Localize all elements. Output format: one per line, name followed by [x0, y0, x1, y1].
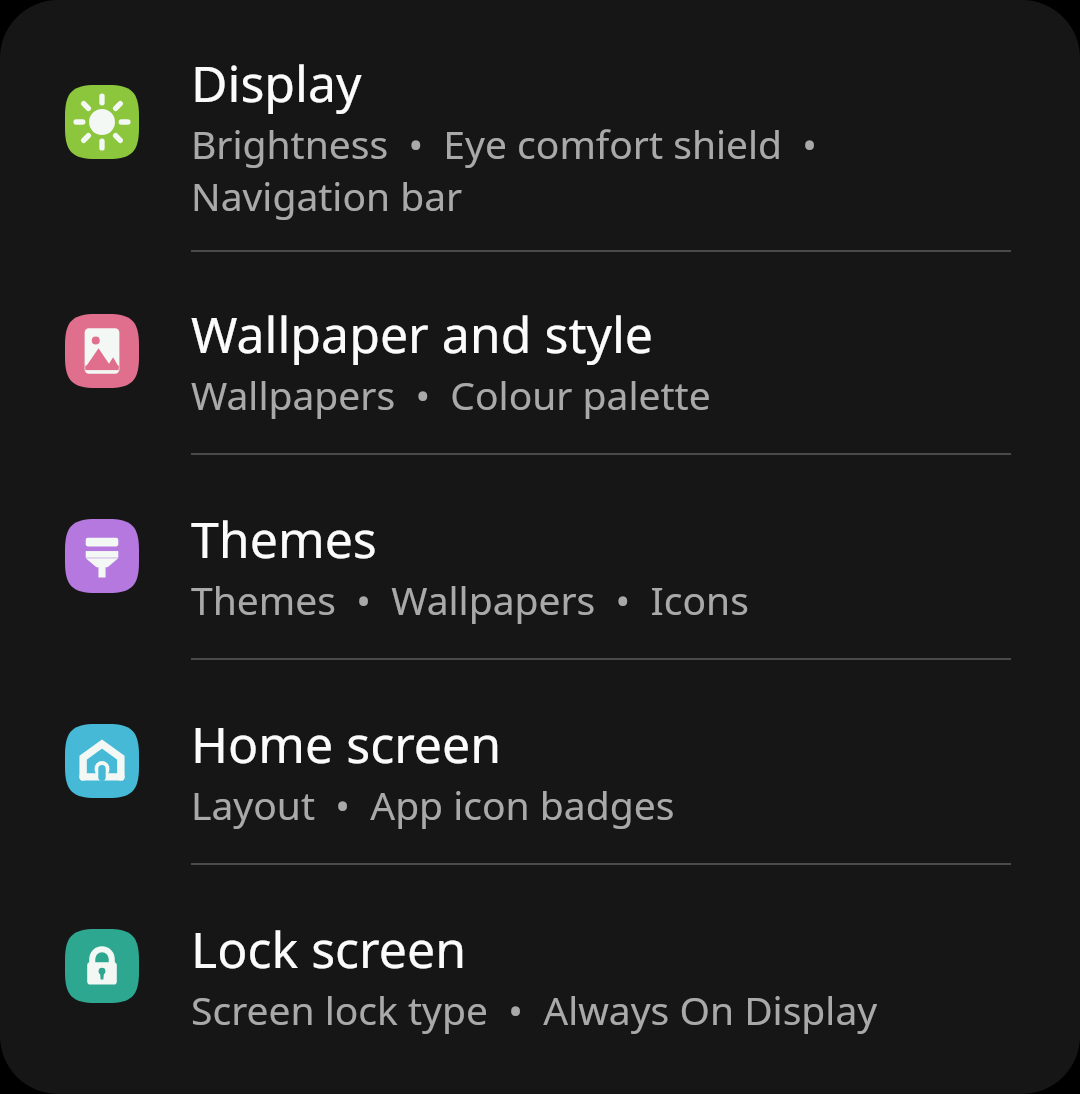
staticText: Home screen [191, 710, 502, 778]
staticText: Lock screen [191, 915, 467, 983]
staticText: Brightness • Eye comfort shield • Naviga… [191, 117, 1011, 222]
staticText: Themes [191, 505, 377, 573]
button[interactable] [0, 688, 1080, 863]
staticText: Screen lock type • Always On Display [191, 983, 878, 1036]
button[interactable] [0, 893, 1080, 1040]
staticText: Themes • Wallpapers • Icons [191, 573, 749, 626]
button[interactable] [0, 278, 1080, 453]
button[interactable] [0, 483, 1080, 658]
staticText: Display [191, 49, 362, 117]
staticText: Layout • App icon badges [191, 778, 675, 831]
staticText: Wallpaper and style [191, 300, 654, 368]
button[interactable] [0, 49, 1080, 250]
staticText: Wallpapers • Colour palette [191, 368, 711, 421]
